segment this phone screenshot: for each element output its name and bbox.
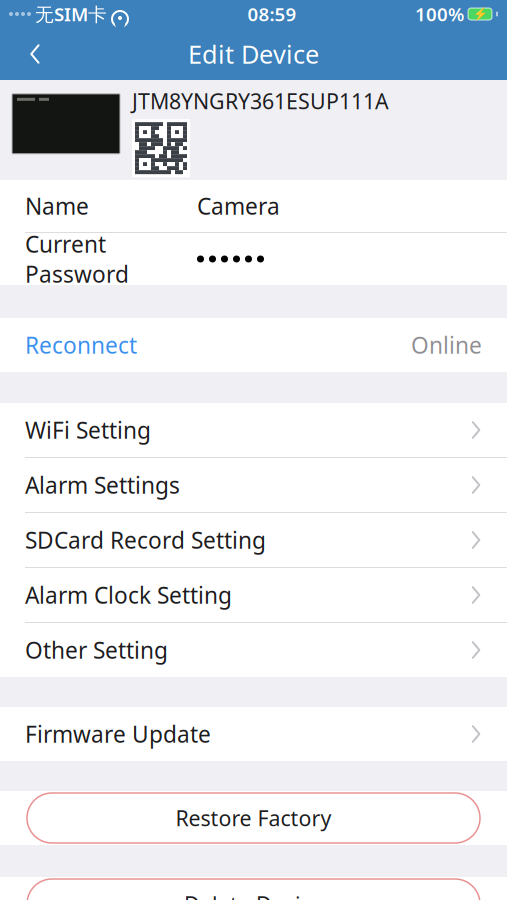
button[interactable]: Back bbox=[12, 32, 58, 76]
button[interactable]: Alarm Settings bbox=[0, 458, 507, 512]
staticText: Alarm Clock Setting bbox=[25, 580, 232, 610]
staticText: Restore Factory bbox=[175, 804, 331, 832]
staticText: WiFi Setting bbox=[25, 415, 151, 445]
staticText: JTM8YNGRY361ESUP111A bbox=[132, 87, 389, 115]
staticText: Alarm Settings bbox=[25, 470, 180, 500]
button[interactable]: Alarm Clock Setting bbox=[0, 568, 507, 622]
staticText: Camera bbox=[197, 191, 280, 221]
button[interactable]: Restore Factory bbox=[27, 793, 480, 843]
staticText: SDCard Record Setting bbox=[25, 525, 266, 555]
button[interactable]: WiFi Setting bbox=[0, 403, 507, 457]
staticText: 08:59 bbox=[247, 2, 296, 26]
staticText: Reconnect bbox=[25, 330, 137, 360]
staticText: 100% bbox=[415, 2, 464, 26]
button[interactable]: Firmware Update bbox=[0, 707, 507, 761]
staticText: Online bbox=[411, 330, 482, 360]
button[interactable]: Reconnect bbox=[0, 318, 507, 372]
staticText: ⚡ bbox=[472, 7, 487, 21]
button[interactable]: Other Setting bbox=[0, 623, 507, 677]
button[interactable]: SDCard Record Setting bbox=[0, 513, 507, 567]
staticText: Other Setting bbox=[25, 635, 168, 665]
staticText: Name bbox=[25, 191, 89, 221]
staticText: Firmware Update bbox=[25, 719, 211, 749]
staticText: 无SIM卡 bbox=[35, 2, 107, 26]
staticText: Current Password bbox=[25, 229, 129, 289]
staticText: Edit Device bbox=[188, 37, 319, 71]
staticText: Delete Device bbox=[184, 890, 323, 900]
button[interactable]: Delete Device bbox=[27, 879, 480, 900]
